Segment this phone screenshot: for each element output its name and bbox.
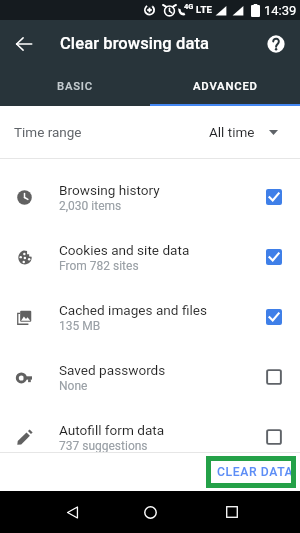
button[interactable]: Time range	[0, 106, 300, 158]
button[interactable]: Recent apps	[216, 496, 248, 528]
staticText: ADVANCED	[193, 80, 258, 93]
button[interactable]: Cookies and site data	[0, 227, 300, 287]
staticText: Autofill form data	[59, 422, 165, 438]
staticText: 135 MB	[59, 319, 101, 333]
staticText: 2,030 items	[59, 199, 122, 213]
button[interactable]: Cached images and files	[0, 287, 300, 347]
button[interactable]: Back	[56, 496, 88, 528]
staticText: LTE	[196, 4, 213, 15]
staticText: All time	[209, 124, 255, 140]
staticText: From 782 sites	[59, 259, 139, 273]
button[interactable]: CLEAR DATA	[211, 457, 299, 487]
staticText: 737 suggestions	[59, 439, 148, 452]
button[interactable]: Navigate up	[8, 28, 40, 60]
staticText: Saved passwords	[59, 362, 166, 378]
staticText: 4G	[184, 2, 194, 11]
staticText: Time range	[14, 124, 82, 140]
staticText: CLEAR DATA	[217, 465, 294, 479]
button[interactable]: Home	[134, 496, 166, 528]
button[interactable]: Autofill form data	[0, 407, 300, 452]
button[interactable]: ADVANCED	[150, 67, 300, 106]
staticText: Cookies and site data	[59, 242, 190, 258]
staticText: Cached images and files	[59, 302, 207, 318]
staticText: Browsing history	[59, 182, 160, 198]
button[interactable]: Saved passwords	[0, 347, 300, 407]
staticText: Clear browsing data	[60, 34, 210, 53]
staticText: None	[59, 379, 88, 393]
button[interactable]: Help and feedback	[260, 28, 292, 60]
button[interactable]: Browsing history	[0, 167, 300, 227]
button[interactable]: BASIC	[0, 67, 150, 106]
staticText: 14:39	[264, 3, 297, 18]
staticText: BASIC	[57, 80, 94, 93]
